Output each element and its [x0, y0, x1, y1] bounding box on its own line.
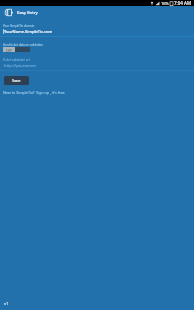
staticText: Save	[12, 78, 21, 83]
staticText: 16%	[161, 1, 169, 6]
button[interactable]: Sign up	[36, 90, 50, 95]
staticText: Send ticket data on validation	[3, 43, 44, 47]
staticText: Ticket validation url	[3, 58, 30, 62]
staticText: , it's free	[50, 90, 65, 95]
staticText: Easy Entry	[17, 9, 38, 15]
other: Easy Entry	[5, 9, 13, 16]
staticText: Your SimpleTix domain	[3, 24, 35, 28]
staticText: OFF	[6, 48, 12, 52]
staticText: YourName.SimpleTix.com	[4, 29, 53, 34]
button[interactable]: Easy Entry	[0, 6, 194, 18]
button[interactable]: Save	[4, 76, 29, 85]
staticText: v1	[4, 301, 9, 307]
staticText: New to SimpleTix?	[3, 90, 36, 95]
staticText: http://yourserver	[4, 63, 37, 68]
button[interactable]: Send ticket data on validation toggle	[3, 47, 30, 52]
staticText: 7:04 AM	[174, 0, 192, 6]
